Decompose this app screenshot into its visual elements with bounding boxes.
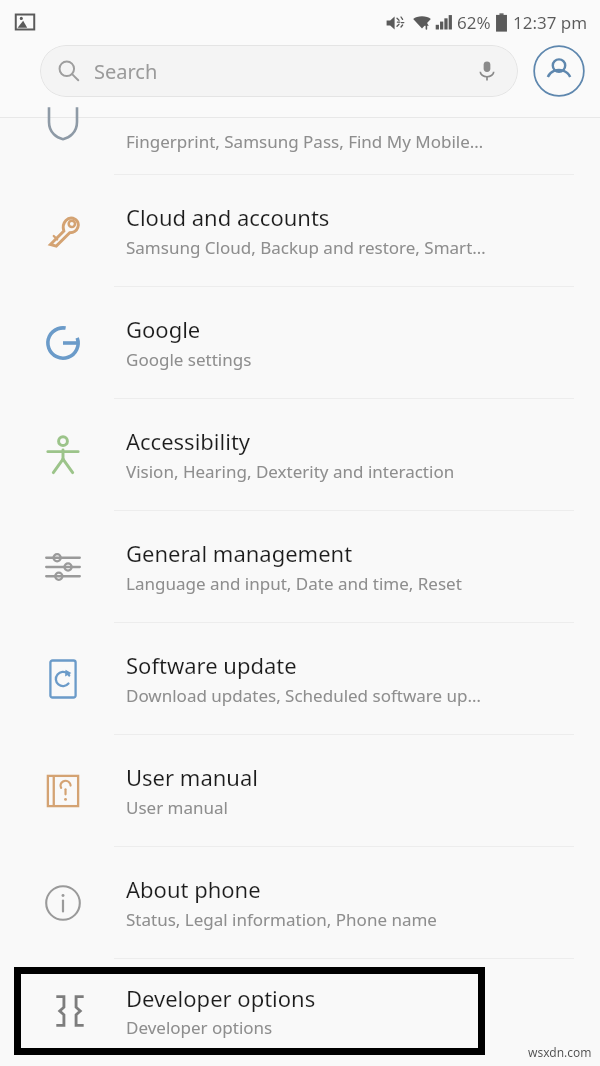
button[interactable]: General management (0, 511, 600, 622)
staticText: User manual (126, 796, 228, 819)
button[interactable]: Developer options (14, 967, 485, 1055)
staticText: Vision, Hearing, Dexterity and interacti… (126, 460, 455, 483)
staticText: Download updates, Scheduled software up… (126, 684, 481, 707)
staticText: User manual (126, 762, 258, 792)
button[interactable]: Accessibility (0, 399, 600, 510)
button[interactable]: Search (40, 45, 518, 97)
staticText: Search (94, 58, 158, 85)
staticText: Language and input, Date and time, Reset (126, 572, 462, 595)
staticText: Software update (126, 650, 297, 680)
staticText: Status, Legal information, Phone name (126, 908, 437, 931)
staticText: 62% (457, 11, 491, 34)
button[interactable]: Google (0, 287, 600, 398)
staticText: Fingerprint, Samsung Pass, Find My Mobil… (126, 130, 484, 153)
button[interactable]: Voice search (474, 58, 500, 84)
staticText: 12:37 pm (513, 11, 588, 34)
staticText: General management (126, 538, 353, 568)
button[interactable]: Cloud and accounts (0, 175, 600, 286)
button[interactable]: About phone (0, 847, 600, 958)
staticText: Samsung Cloud, Backup and restore, Smart… (126, 236, 486, 259)
staticText: About phone (126, 874, 261, 904)
staticText: Accessibility (126, 426, 251, 456)
staticText: wsxdn.com (528, 1044, 592, 1060)
staticText: Google settings (126, 348, 252, 371)
staticText: Cloud and accounts (126, 202, 330, 232)
staticText: Google (126, 314, 201, 344)
button[interactable]: Account (532, 44, 586, 98)
button[interactable]: User manual (0, 735, 600, 846)
button[interactable]: Software update (0, 623, 600, 734)
staticText: Developer options (126, 1016, 273, 1039)
staticText: Developer options (126, 983, 316, 1013)
